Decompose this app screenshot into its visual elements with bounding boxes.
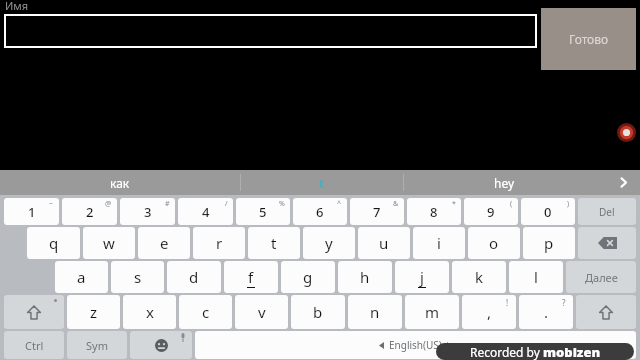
staticText: u	[379, 233, 389, 253]
button[interactable]: Backspace	[578, 227, 636, 259]
staticText: .	[544, 302, 549, 322]
staticText: j	[420, 267, 424, 287]
staticText: z	[90, 302, 98, 322]
staticText: 1	[28, 203, 36, 221]
staticText: ^	[337, 199, 342, 209]
staticText: c	[202, 302, 210, 322]
staticText: English(US)	[389, 338, 442, 352]
button[interactable]: f	[224, 261, 278, 293]
button[interactable]: 7	[350, 198, 404, 225]
button[interactable]: x	[123, 295, 176, 329]
button[interactable]: Ctrl	[4, 331, 64, 359]
button[interactable]: Emoji	[130, 331, 192, 359]
staticText: d	[189, 267, 199, 287]
button[interactable]: z	[67, 295, 120, 329]
button[interactable]: d	[167, 261, 221, 293]
button[interactable]: Shift	[576, 295, 636, 329]
staticText: n	[370, 302, 380, 322]
button[interactable]: Recorder	[617, 123, 636, 142]
button[interactable]: p	[523, 227, 575, 259]
staticText: t	[319, 175, 325, 191]
staticText: 4	[202, 203, 210, 221]
staticText: e	[160, 233, 169, 253]
staticText: *	[452, 199, 456, 209]
button[interactable]: hey	[404, 170, 604, 195]
button[interactable]: Sym	[67, 331, 127, 359]
button[interactable]: 3	[120, 198, 175, 225]
button[interactable]: r	[193, 227, 245, 259]
staticText: r	[216, 233, 223, 253]
button[interactable]: a	[55, 261, 108, 293]
staticText: !	[506, 297, 509, 308]
staticText: ,	[487, 302, 492, 322]
staticText: &	[393, 199, 399, 209]
staticText: ~	[49, 199, 54, 209]
button[interactable]: o	[468, 227, 520, 259]
button[interactable]: y	[303, 227, 355, 259]
button[interactable]: 1	[4, 198, 59, 225]
staticText: 5	[259, 203, 267, 221]
button[interactable]: Готово	[541, 8, 636, 70]
staticText: 7	[373, 203, 381, 221]
staticText: 6	[316, 203, 324, 221]
button[interactable]: More suggestions	[606, 170, 640, 195]
button[interactable]: 9	[464, 198, 518, 225]
staticText: w	[103, 233, 115, 253]
button[interactable]: 4	[178, 198, 233, 225]
staticText: Готово	[569, 31, 609, 47]
button[interactable]: e	[138, 227, 190, 259]
staticText: Имя	[5, 0, 29, 13]
staticText: Del	[599, 205, 615, 219]
staticText: 9	[487, 203, 495, 221]
button[interactable]: s	[111, 261, 164, 293]
button[interactable]: t	[241, 170, 403, 195]
staticText: Recorded by	[470, 344, 543, 360]
staticText: 3	[144, 203, 152, 221]
staticText: m	[425, 302, 440, 322]
button[interactable]: Shift	[4, 295, 64, 329]
staticText: @	[105, 199, 112, 209]
button[interactable]: m	[405, 295, 459, 329]
staticText: /	[225, 199, 228, 209]
button[interactable]: как	[0, 170, 240, 195]
button[interactable]	[4, 14, 537, 48]
staticText: h	[360, 267, 370, 287]
staticText: #	[165, 199, 170, 209]
button[interactable]: g	[281, 261, 335, 293]
button[interactable]: k	[452, 261, 506, 293]
button[interactable]: 6	[293, 198, 347, 225]
button[interactable]: v	[235, 295, 288, 329]
staticText: a	[77, 267, 86, 287]
staticText: b	[313, 302, 323, 322]
staticText: hey	[494, 175, 515, 191]
button[interactable]: u	[358, 227, 410, 259]
button[interactable]: 5	[236, 198, 290, 225]
staticText: y	[325, 233, 333, 253]
button[interactable]: j	[395, 261, 449, 293]
staticText: i	[437, 233, 441, 253]
button[interactable]: .	[519, 295, 573, 329]
staticText: l	[534, 267, 538, 287]
button[interactable]: t	[248, 227, 300, 259]
staticText: q	[49, 233, 59, 253]
button[interactable]: Далее	[566, 261, 636, 293]
staticText: p	[544, 233, 554, 253]
button[interactable]: English(US)	[195, 331, 636, 359]
staticText: 2	[86, 203, 94, 221]
staticText: 8	[430, 203, 438, 221]
button[interactable]: b	[291, 295, 345, 329]
button[interactable]: n	[348, 295, 402, 329]
button[interactable]: w	[83, 227, 135, 259]
button[interactable]: q	[27, 227, 80, 259]
staticText: o	[489, 233, 499, 253]
button[interactable]: 2	[62, 198, 117, 225]
button[interactable]: Del	[578, 198, 636, 225]
button[interactable]: i	[413, 227, 465, 259]
staticText: ?	[562, 297, 566, 308]
button[interactable]: l	[509, 261, 563, 293]
button[interactable]: h	[338, 261, 392, 293]
button[interactable]: 8	[407, 198, 461, 225]
button[interactable]: 0	[521, 198, 575, 225]
button[interactable]: c	[179, 295, 232, 329]
button[interactable]: ,	[462, 295, 516, 329]
